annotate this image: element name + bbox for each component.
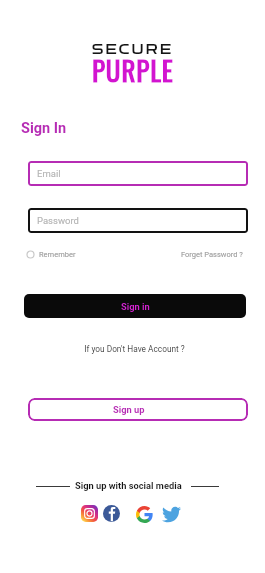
button[interactable]: Instagram — [81, 505, 98, 522]
button[interactable]: Twitter — [162, 505, 181, 524]
staticText: Sign In — [21, 120, 67, 137]
staticText: If you Don't Have Account ? — [84, 344, 185, 354]
staticText: Sign up with social media — [75, 480, 182, 491]
staticText: Sign up — [113, 404, 145, 415]
staticText: SECURE — [92, 42, 174, 57]
button[interactable]: Remember — [26, 250, 76, 259]
staticText: Email — [37, 168, 61, 179]
staticText: Sign in — [121, 301, 150, 312]
button[interactable]: Password — [28, 208, 248, 233]
button[interactable]: Sign up — [28, 398, 248, 421]
button[interactable]: Facebook — [103, 505, 120, 522]
button[interactable]: Sign in — [24, 294, 246, 318]
button[interactable]: Email — [28, 161, 248, 186]
staticText: PURPLE — [92, 50, 174, 90]
staticText: Password — [37, 215, 79, 226]
staticText: Remember — [39, 250, 76, 259]
button[interactable]: Forget Password ? — [181, 250, 243, 259]
button[interactable]: Google — [136, 506, 153, 523]
